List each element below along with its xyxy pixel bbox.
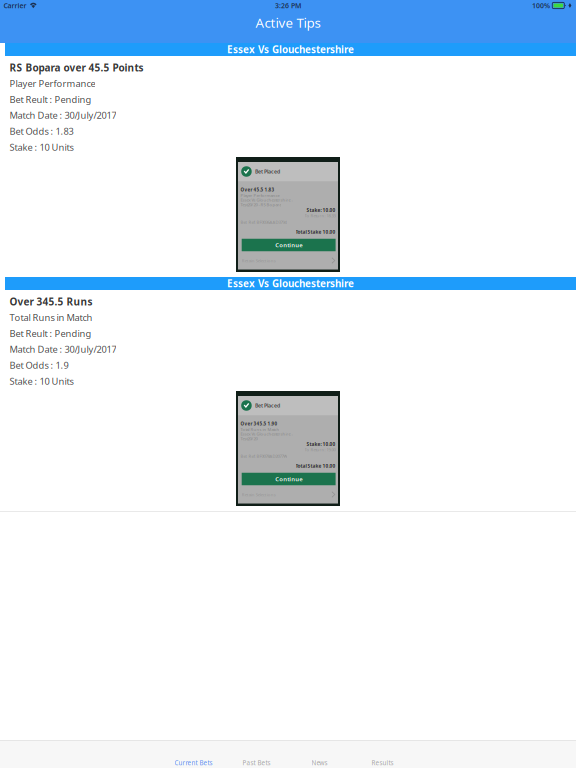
staticText: Bet Reult : Pending [9,93,91,106]
staticText: Bet Placed [255,402,280,409]
staticText: Carrier [4,1,27,10]
button[interactable]: Past Bets [225,741,288,768]
button[interactable]: Retain Selections [238,485,338,504]
staticText: Bet Odds : 1.9 [9,359,68,371]
staticText: Player Performance [9,77,95,90]
staticText: Total Runs in Match [240,426,279,432]
staticText: Bet Ref: BF0036AAD3794 [240,219,286,225]
staticText: Match Date : 30/July/2017 [9,343,116,356]
staticText: Retain Selections [242,492,276,497]
staticText: Bet Placed [255,168,280,175]
staticText: To Return: 19.00 [305,447,336,452]
staticText: RS Bopara over 45.5 Points [9,61,143,74]
staticText: Player Performance [240,192,279,198]
staticText: Total Runs in Match [9,311,92,324]
staticText: Bet Ref: BF0078AD2077W [240,453,287,459]
button[interactable]: Continue [242,239,336,251]
staticText: To Return: 18.33 [305,213,336,218]
button[interactable]: News [288,741,351,768]
staticText: Test20/20 - RS Bopara [240,202,281,207]
staticText: Retain Selections [242,258,276,263]
staticText: Test20/20 [240,436,257,441]
staticText: Bet Reult : Pending [9,327,91,340]
staticText: Current Bets [174,758,212,767]
staticText: Stake: 10.00 [307,441,336,447]
staticText: News [311,758,327,767]
staticText: Past Bets [242,758,270,767]
staticText: Over 45.5 1.83 [240,187,274,193]
staticText: Essex Vs Glouchestershire [227,43,354,56]
staticText: 3:26 PM [275,1,301,10]
staticText: Total Stake 10.00 [296,229,336,235]
staticText: Essex Vs Glouchestershire - [240,197,292,203]
staticText: Continue [275,241,302,249]
button[interactable]: Continue [242,473,336,485]
button[interactable]: Results [351,741,414,768]
staticText: Essex Vs Glouchestershire - [240,431,292,437]
button[interactable]: Retain Selections [238,251,338,270]
staticText: Over 345.5 1.90 [240,421,277,427]
button[interactable]: Current Bets [162,741,225,768]
staticText: Stake: 10.00 [307,207,336,213]
staticText: Stake : 10 Units [9,141,73,153]
staticText: Over 345.5 Runs [9,295,92,308]
staticText: Results [371,758,393,767]
staticText: Essex Vs Glouchestershire [227,277,354,290]
staticText: 100% [532,1,550,10]
staticText: Active Tips [255,13,320,32]
staticText: Bet Odds : 1.83 [9,125,73,137]
staticText: Total Stake 10.00 [296,463,336,469]
staticText: Continue [275,475,302,483]
staticText: Stake : 10 Units [9,375,73,387]
staticText: Match Date : 30/July/2017 [9,109,116,122]
